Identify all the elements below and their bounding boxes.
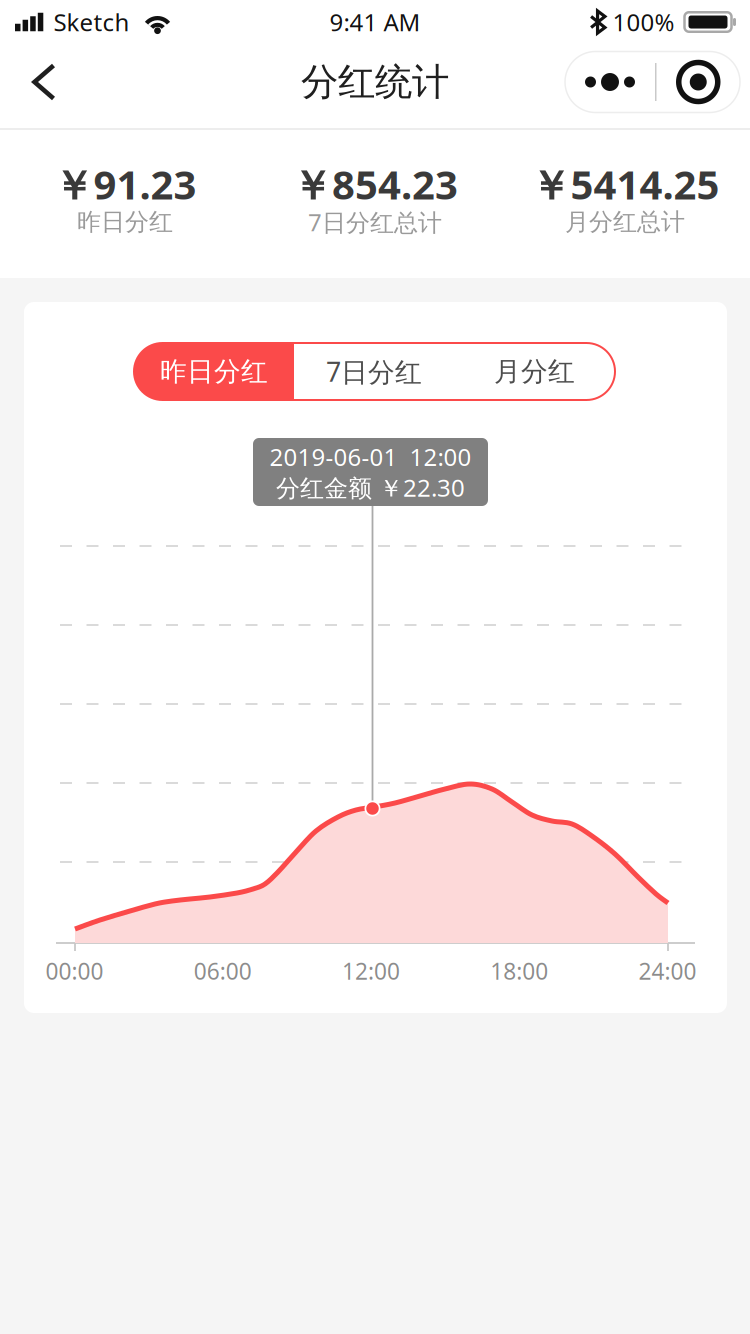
staticText: 24:00 xyxy=(638,956,696,986)
staticText: 月分红总计 xyxy=(565,207,685,237)
staticText: 昨日分红 xyxy=(77,207,173,237)
staticText: 00:00 xyxy=(45,956,103,986)
staticText: 100% xyxy=(612,6,674,38)
staticText: 2019-06-01 12:00 xyxy=(269,441,471,472)
staticText: 月分红 xyxy=(494,355,575,388)
staticText: 7日分红 xyxy=(326,354,422,389)
button[interactable]: 7日分红 xyxy=(294,343,454,400)
staticText: 昨日分红 xyxy=(160,355,268,388)
button[interactable]: 昨日分红 xyxy=(134,343,294,400)
staticText: 9:41 AM xyxy=(329,6,420,38)
staticText: Sketch xyxy=(53,6,129,38)
button[interactable]: 月分红 xyxy=(454,343,615,400)
staticText: ￥854.23 xyxy=(292,157,458,211)
staticText: ￥5414.25 xyxy=(530,157,719,211)
button[interactable]: Back xyxy=(12,47,76,117)
staticText: ￥91.23 xyxy=(53,157,196,211)
staticText: 12:00 xyxy=(342,956,400,986)
staticText: 18:00 xyxy=(490,956,548,986)
staticText: 7日分红总计 xyxy=(308,206,442,238)
staticText: 分红金额 ￥22.30 xyxy=(276,471,465,503)
staticText: 06:00 xyxy=(194,956,252,986)
staticText: 分红统计 xyxy=(301,59,449,105)
button[interactable]: More options xyxy=(565,51,740,112)
